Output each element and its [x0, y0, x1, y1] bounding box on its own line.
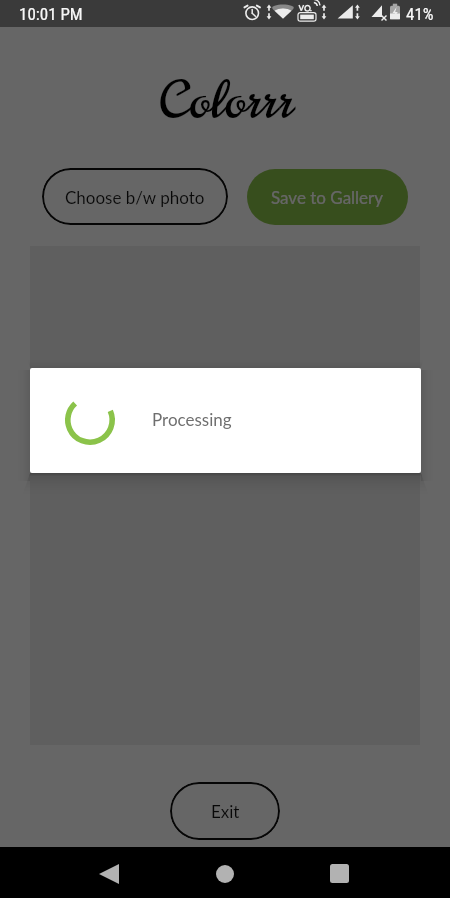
button[interactable]: Back [86, 847, 134, 898]
button[interactable]: Recent apps [314, 847, 362, 898]
staticText: 10:01 PM [19, 4, 83, 24]
staticText: 41% [406, 4, 434, 24]
button[interactable]: Choose b/w photo [42, 168, 228, 225]
staticText: Processing [152, 409, 232, 429]
button[interactable]: Home [201, 847, 249, 898]
staticText: Exit [211, 801, 240, 821]
button[interactable]: Exit [170, 782, 280, 840]
staticText: Choose b/w photo [65, 187, 205, 207]
button[interactable]: Save to Gallery [247, 169, 408, 225]
staticText: Colorrr [158, 66, 293, 136]
staticText: Save to Gallery [271, 187, 384, 207]
